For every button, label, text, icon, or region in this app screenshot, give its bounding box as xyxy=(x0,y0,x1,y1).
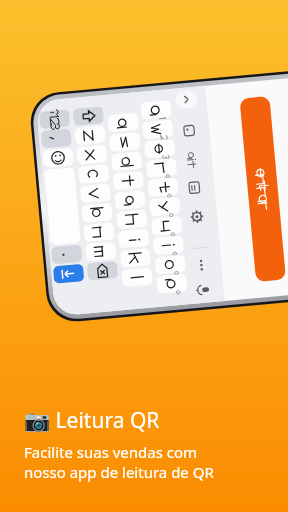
staticText: Facilite suas vendas com nosso app de le… xyxy=(24,442,214,482)
staticText: 📷 Leitura QR xyxy=(24,406,160,435)
button[interactable]: Entrar xyxy=(236,90,266,310)
